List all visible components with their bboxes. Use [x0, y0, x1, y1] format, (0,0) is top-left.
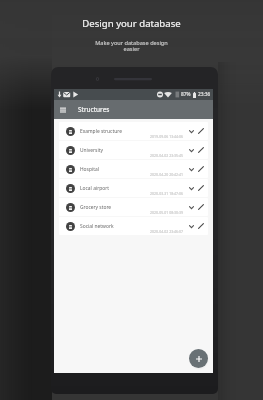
staticText: Design your database: [82, 17, 181, 30]
staticText: 2020-04-20 20:42:41: [150, 172, 184, 177]
button[interactable]: Expand: [187, 146, 195, 154]
staticText: Structures: [78, 105, 110, 114]
button[interactable]: Grocery store: [59, 198, 208, 216]
button[interactable]: Expand: [187, 222, 195, 230]
staticText: 2020-04-02 23:46:07: [150, 229, 184, 234]
button[interactable]: Edit: [197, 184, 205, 192]
button[interactable]: Expand: [187, 184, 195, 192]
button[interactable]: Expand: [187, 127, 195, 135]
staticText: 2020-03-31 18:47:06: [150, 191, 184, 196]
button[interactable]: Expand: [187, 203, 195, 211]
button[interactable]: Hospital: [59, 160, 208, 178]
button[interactable]: Social network: [59, 217, 208, 235]
staticText: University: [80, 147, 103, 154]
button[interactable]: Edit: [197, 146, 205, 154]
staticText: 87%: [181, 91, 191, 98]
button[interactable]: Edit: [197, 222, 205, 230]
staticText: Example structure: [80, 128, 122, 135]
staticText: Make your database design easier: [95, 39, 168, 53]
button[interactable]: Edit: [197, 203, 205, 211]
button[interactable]: Open navigation menu: [60, 107, 66, 113]
button[interactable]: Example structure: [59, 122, 208, 140]
staticText: 2020-05-01 08:30:39: [150, 210, 184, 215]
staticText: Social network: [80, 223, 114, 230]
staticText: Hospital: [80, 166, 99, 173]
button[interactable]: University: [59, 141, 208, 159]
staticText: 23:36: [198, 91, 211, 98]
staticText: Local airport: [80, 185, 109, 192]
staticText: 2019-09-06 13:44:06: [150, 134, 184, 139]
staticText: Grocery store: [80, 204, 112, 211]
button[interactable]: Edit: [197, 165, 205, 173]
staticText: 2020-04-02 23:35:45: [150, 153, 184, 158]
button[interactable]: Local airport: [59, 179, 208, 197]
button[interactable]: Expand: [187, 165, 195, 173]
button[interactable]: Edit: [197, 127, 205, 135]
button[interactable]: Add structure: [189, 349, 208, 368]
